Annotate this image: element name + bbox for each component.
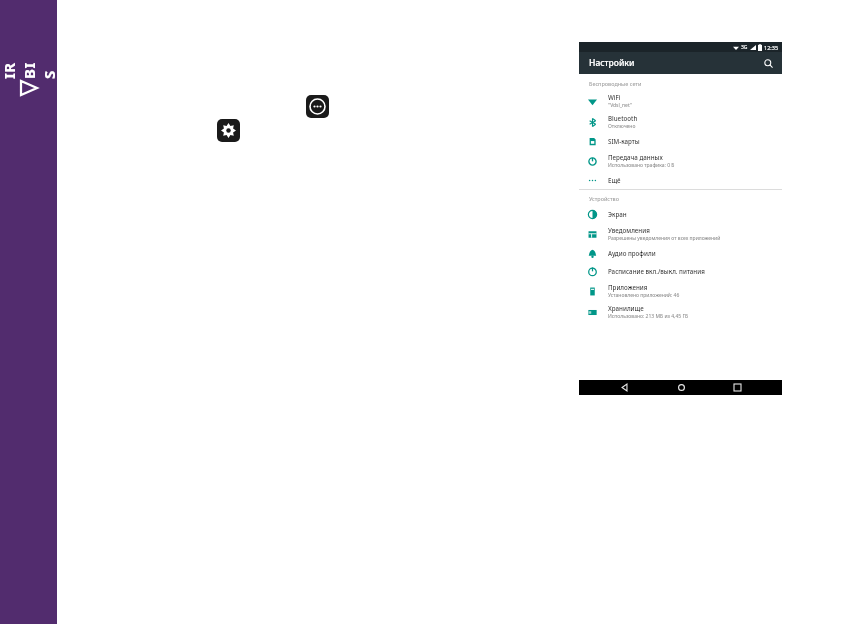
- staticText: Беспроводные сети: [589, 80, 642, 87]
- staticText: Передача данных: [608, 153, 663, 161]
- staticText: Разрешены уведомления от всех приложений: [608, 235, 721, 242]
- staticText: WiFi: [608, 93, 621, 101]
- button[interactable]: Хранилище: [579, 301, 782, 322]
- staticText: Отключено: [608, 123, 636, 130]
- button[interactable]: Аудио профили: [579, 244, 782, 262]
- staticText: 12:35: [764, 44, 779, 51]
- staticText: 3G: [741, 44, 748, 51]
- staticText: "Vdsl_net": [608, 102, 632, 109]
- staticText: IRBIS: [0, 61, 59, 79]
- staticText: Приложения: [608, 283, 648, 291]
- staticText: Установлено приложений: 46: [608, 292, 680, 299]
- staticText: Экран: [608, 210, 627, 218]
- button[interactable]: Главный экран: [670, 380, 692, 395]
- button[interactable]: Приложения: [579, 280, 782, 301]
- button[interactable]: Обзор: [726, 380, 748, 395]
- button[interactable]: Ещё: [579, 171, 782, 189]
- staticText: Ещё: [608, 176, 621, 184]
- button[interactable]: Экран: [579, 205, 782, 223]
- staticText: Использовано: 213 МБ из 4,45 ГБ: [608, 313, 689, 320]
- button[interactable]: Расписание вкл./выкл. питания: [579, 262, 782, 280]
- button[interactable]: Bluetooth: [579, 111, 782, 132]
- button[interactable]: Настройки: [217, 119, 240, 142]
- button[interactable]: Все приложения: [306, 95, 329, 118]
- button[interactable]: Назад: [613, 380, 635, 395]
- button[interactable]: Передача данных: [579, 150, 782, 171]
- staticText: Аудио профили: [608, 249, 656, 257]
- staticText: Хранилище: [608, 304, 644, 312]
- button[interactable]: SIM-карты: [579, 132, 782, 150]
- staticText: SIM-карты: [608, 137, 640, 145]
- staticText: Уведомления: [608, 226, 650, 234]
- staticText: Расписание вкл./выкл. питания: [608, 267, 705, 275]
- staticText: Настройки: [589, 57, 635, 69]
- button[interactable]: Поиск: [760, 55, 776, 71]
- button[interactable]: WiFi: [579, 90, 782, 111]
- button[interactable]: Уведомления: [579, 223, 782, 244]
- staticText: Устройство: [589, 195, 619, 202]
- staticText: Использовано трафика: 0 Б: [608, 162, 675, 169]
- staticText: Bluetooth: [608, 114, 638, 122]
